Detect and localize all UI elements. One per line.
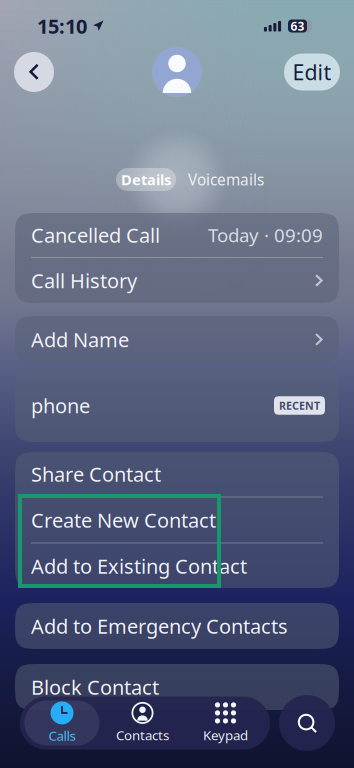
staticText: Edit	[292, 57, 331, 87]
staticText: Add to Existing Contact	[31, 552, 247, 580]
button[interactable]: Add to Emergency Contacts	[15, 603, 339, 649]
staticText: Calls	[48, 726, 75, 745]
staticText: Call History	[31, 267, 137, 294]
staticText: phone	[31, 392, 90, 419]
staticText: RECENT	[279, 398, 320, 413]
staticText: Add Name	[31, 326, 129, 353]
button[interactable]: Keypad	[185, 700, 265, 745]
button[interactable]: Call History	[15, 258, 339, 303]
button[interactable]: Block Contact	[15, 664, 339, 710]
button[interactable]: Share Contact	[15, 451, 339, 496]
staticText: 15:10	[37, 12, 87, 40]
button[interactable]: Voicemails	[176, 168, 270, 191]
staticText: Cancelled Call	[31, 221, 160, 249]
button[interactable]: Create New Contact	[15, 497, 339, 542]
button[interactable]: Search	[279, 695, 335, 751]
button[interactable]: Back	[14, 52, 54, 92]
staticText: Share Contact	[31, 460, 161, 488]
staticText: Today · 09:09	[208, 222, 323, 248]
staticText: Add to Emergency Contacts	[31, 612, 288, 640]
staticText: Voicemails	[188, 169, 264, 190]
button[interactable]: Calls	[24, 700, 99, 745]
staticText: Details	[121, 169, 171, 189]
staticText: 63	[290, 18, 304, 34]
button[interactable]: Add to Existing Contact	[15, 543, 339, 588]
button[interactable]: Edit	[284, 53, 340, 90]
button[interactable]: Add Name	[15, 316, 339, 363]
button[interactable]: Contacts	[99, 700, 185, 745]
staticText: Block Contact	[31, 673, 159, 701]
staticText: Create New Contact	[31, 506, 216, 534]
button[interactable]: Details	[116, 168, 176, 191]
staticText: Keypad	[203, 726, 248, 744]
staticText: Contacts	[116, 726, 169, 744]
